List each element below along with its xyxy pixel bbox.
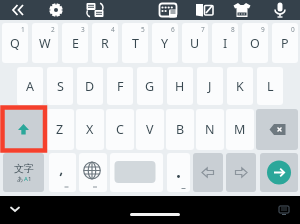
staticText: T [132,35,139,52]
button[interactable] [4,199,26,219]
staticText: R [101,35,109,52]
staticText: 5 [141,25,145,34]
staticText: Y [161,35,169,52]
button[interactable] [266,0,294,20]
staticText: 4 [111,25,115,34]
button[interactable]: P [272,23,298,63]
button[interactable]: B [166,109,194,150]
staticText: B [176,121,185,138]
button[interactable] [256,109,298,150]
button[interactable] [81,0,109,20]
button[interactable]: C [106,109,134,150]
staticText: 1 [21,25,25,34]
button[interactable]: D [77,67,103,105]
button[interactable]: H [167,67,193,105]
button[interactable]: U [182,23,208,63]
button[interactable]: F [107,67,133,105]
button[interactable]: G [137,67,163,105]
staticText: M [234,121,246,138]
staticText: 9 [261,25,265,34]
button[interactable]: K [227,67,253,105]
button[interactable]: O [242,23,268,63]
button[interactable]: R [92,23,118,63]
staticText: 1 [28,175,32,183]
button[interactable] [79,153,107,192]
staticText: 8 [231,25,235,34]
staticText: 6 [171,25,175,34]
button[interactable] [226,153,256,192]
staticText: X [86,121,94,138]
button[interactable] [276,203,292,217]
button[interactable] [260,153,298,192]
staticText: F [117,78,124,95]
button[interactable]: 文字 [3,153,44,192]
button[interactable]: N [196,109,224,150]
staticText: L [267,78,274,95]
button[interactable]: E [62,23,88,63]
button[interactable] [4,0,32,20]
staticText: 文字 [14,162,34,175]
button[interactable] [130,213,180,216]
button[interactable]: M [226,109,254,150]
staticText: J [208,78,212,95]
button[interactable]: T [122,23,148,63]
staticText: P [281,35,289,52]
staticText: U [190,35,200,52]
staticText: O [250,35,260,52]
staticText: Q [10,35,20,52]
button[interactable]: Z [46,109,74,150]
staticText: 0 [291,25,295,34]
button[interactable] [154,0,182,20]
staticText: D [85,78,95,95]
staticText: 2 [51,25,55,34]
staticText: I [223,35,228,52]
staticText: N [205,121,215,138]
button[interactable] [228,0,256,20]
button[interactable] [4,109,43,150]
staticText: S [57,78,64,95]
staticText: 7 [201,25,205,34]
button[interactable]: Y [152,23,178,63]
button[interactable] [110,153,163,192]
button[interactable]: W [32,23,58,63]
button[interactable] [42,0,70,20]
staticText: W [39,35,51,52]
staticText: H [175,78,185,95]
staticText: Z [56,121,64,138]
button[interactable]: A [17,67,43,105]
button[interactable]: J [197,67,223,105]
staticText: G [145,78,155,95]
button[interactable] [49,153,76,192]
staticText: 3 [81,25,85,34]
staticText: E [72,35,79,52]
button[interactable] [167,153,190,192]
staticText: C [116,121,124,138]
staticText: K [236,78,244,95]
button[interactable]: X [76,109,104,150]
button[interactable] [193,153,223,192]
staticText: あ [17,175,24,183]
staticText: A [24,175,28,183]
staticText: V [146,121,154,138]
button[interactable]: V [136,109,164,150]
button[interactable]: L [257,67,283,105]
button[interactable]: I [212,23,238,63]
button[interactable] [191,0,219,20]
button[interactable]: S [47,67,73,105]
staticText: A [26,78,34,95]
button[interactable]: Q [2,23,28,63]
